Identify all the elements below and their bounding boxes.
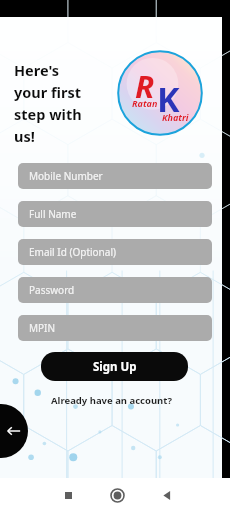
button[interactable]: Password bbox=[18, 277, 212, 303]
staticText: Email Id (Optional) bbox=[29, 245, 116, 259]
button[interactable]: Recents bbox=[58, 485, 78, 505]
button[interactable]: Email Id (Optional) bbox=[18, 239, 212, 265]
button[interactable]: MPIN bbox=[18, 315, 212, 341]
staticText: step with bbox=[14, 104, 82, 124]
staticText: Khatri bbox=[162, 111, 189, 123]
button[interactable]: Mobile Number bbox=[18, 163, 212, 189]
button[interactable]: Sign Up bbox=[41, 352, 188, 381]
button[interactable]: Back bbox=[156, 485, 176, 505]
staticText: Mobile Number bbox=[29, 169, 103, 183]
staticText: Already have an account? bbox=[51, 394, 172, 407]
staticText: your first bbox=[14, 82, 82, 102]
staticText: MPIN bbox=[29, 321, 56, 335]
staticText: us! bbox=[14, 126, 35, 146]
staticText: Full Name bbox=[29, 207, 77, 221]
staticText: Password bbox=[29, 283, 75, 297]
staticText: Ratan bbox=[132, 97, 158, 109]
staticText: K bbox=[157, 76, 180, 122]
staticText: Here's bbox=[14, 60, 60, 80]
button[interactable]: Back bbox=[0, 404, 28, 458]
staticText: Sign Up bbox=[93, 359, 137, 375]
button[interactable]: Home bbox=[106, 484, 128, 506]
staticText: R bbox=[135, 65, 155, 107]
button[interactable]: Already have an account? bbox=[0, 391, 222, 409]
button[interactable]: Full Name bbox=[18, 201, 212, 227]
